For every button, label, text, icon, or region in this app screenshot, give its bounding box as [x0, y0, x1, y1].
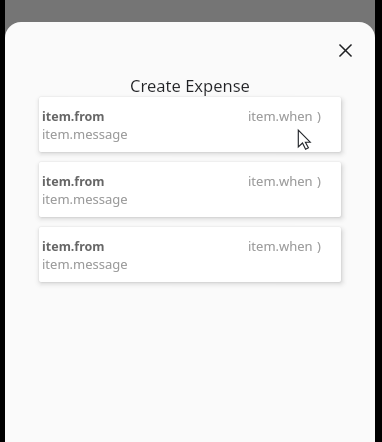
staticText: item.when [248, 172, 313, 190]
staticText: item.message [42, 255, 128, 273]
button[interactable]: Close [332, 37, 358, 63]
staticText: item.from [42, 108, 105, 125]
staticText: ) [317, 107, 321, 125]
button[interactable]: item.from [39, 227, 341, 282]
staticText: Create Expense [5, 74, 375, 96]
button[interactable]: item.from [39, 97, 341, 152]
staticText: ) [317, 172, 321, 190]
staticText: item.from [42, 173, 105, 190]
staticText: ) [317, 237, 321, 255]
button[interactable]: item.from [39, 162, 341, 217]
staticText: item.when [248, 237, 313, 255]
staticText: item.from [42, 238, 105, 255]
staticText: item.message [42, 190, 128, 208]
staticText: item.when [248, 107, 313, 125]
staticText: item.message [42, 125, 128, 143]
